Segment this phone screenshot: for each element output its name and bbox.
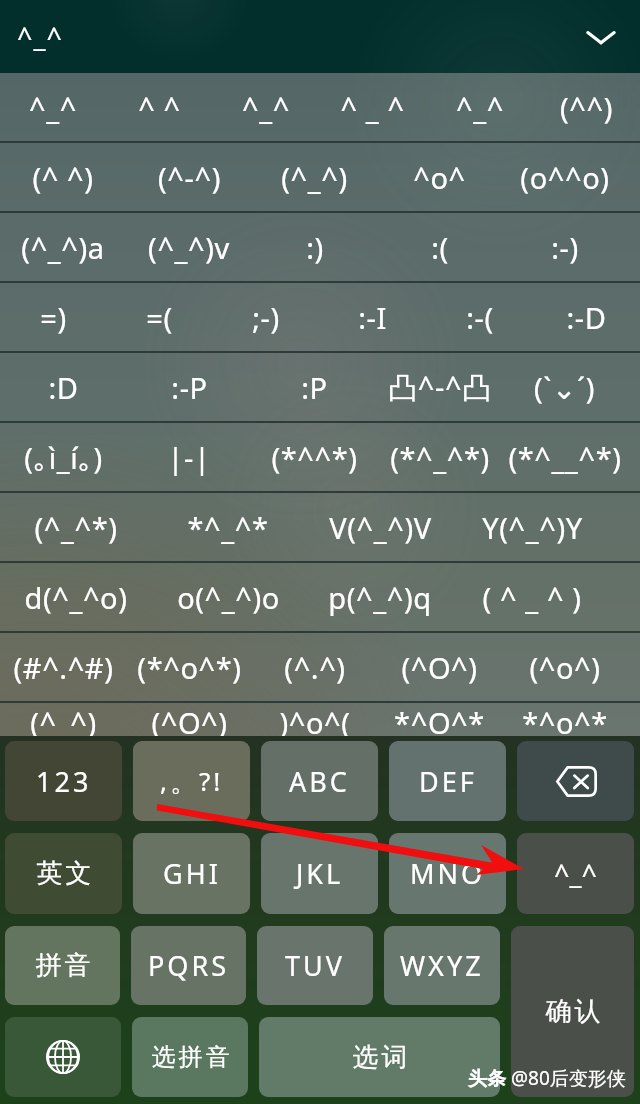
- button[interactable]: ^ ^: [106, 73, 212, 141]
- staticText: :-D: [566, 298, 607, 337]
- staticText: 123: [36, 763, 92, 800]
- button[interactable]: :D: [0, 353, 126, 421]
- button[interactable]: 123: [5, 741, 122, 821]
- staticText: DEF: [419, 763, 477, 800]
- button[interactable]: *^O^*: [377, 703, 502, 736]
- button[interactable]: MNO: [389, 833, 506, 914]
- button[interactable]: )^o^(: [252, 703, 377, 736]
- button[interactable]: V(^_^)V: [304, 493, 456, 561]
- button[interactable]: (^_^)a: [0, 213, 126, 281]
- staticText: *^O^*: [394, 703, 485, 736]
- button[interactable]: (*^o^*): [126, 633, 252, 701]
- button[interactable]: p(^_^)q: [304, 563, 456, 631]
- staticText: :-P: [171, 368, 208, 407]
- button[interactable]: =): [0, 283, 106, 351]
- button[interactable]: 选拼音: [132, 1017, 248, 1097]
- button[interactable]: ^ _ ^: [319, 73, 426, 141]
- button[interactable]: Backspace: [517, 741, 634, 821]
- button[interactable]: 选词: [259, 1017, 500, 1097]
- button[interactable]: (^ ^): [0, 143, 126, 211]
- button[interactable]: GHI: [133, 833, 250, 914]
- button[interactable]: :-P: [126, 353, 252, 421]
- button[interactable]: (^_^)v: [126, 213, 252, 281]
- button[interactable]: (^_^): [0, 703, 126, 736]
- staticText: ABC: [289, 763, 350, 800]
- button[interactable]: (*^__^*): [502, 423, 627, 491]
- button[interactable]: :-(: [426, 283, 533, 351]
- staticText: MNO: [410, 855, 486, 892]
- button[interactable]: 确认: [511, 926, 634, 1097]
- button[interactable]: (｡ì_í｡): [0, 423, 126, 491]
- staticText: @80后变形侠: [511, 1065, 626, 1091]
- button[interactable]: *^_^*: [152, 493, 304, 561]
- staticText: =): [40, 298, 67, 337]
- staticText: TUV: [285, 947, 345, 984]
- button[interactable]: (^O^): [126, 703, 252, 736]
- staticText: (^_^): [281, 158, 348, 197]
- button[interactable]: :(: [377, 213, 502, 281]
- button[interactable]: TUV: [257, 926, 373, 1005]
- button[interactable]: (^_^): [252, 143, 377, 211]
- button[interactable]: DEF: [389, 741, 506, 821]
- staticText: :-I: [358, 298, 387, 337]
- button[interactable]: ^o^: [377, 143, 502, 211]
- staticText: 拼音: [34, 949, 92, 982]
- button[interactable]: WXYZ: [384, 926, 500, 1005]
- staticText: :-(: [466, 298, 494, 337]
- button[interactable]: (^^): [533, 73, 640, 141]
- button[interactable]: (^O^): [377, 633, 502, 701]
- button[interactable]: :P: [252, 353, 377, 421]
- button[interactable]: =(: [106, 283, 212, 351]
- button[interactable]: JKL: [261, 833, 378, 914]
- button[interactable]: ^_^: [426, 73, 533, 141]
- staticText: :(: [431, 228, 449, 267]
- button[interactable]: (^_^*): [0, 493, 152, 561]
- button[interactable]: :-I: [319, 283, 426, 351]
- staticText: (^o^): [529, 648, 601, 687]
- staticText: ;-): [252, 298, 280, 337]
- button[interactable]: (^-^): [126, 143, 252, 211]
- staticText: ,。?!: [160, 763, 224, 799]
- staticText: *^_^*: [187, 508, 269, 547]
- staticText: (^ ^): [32, 158, 94, 197]
- button[interactable]: Switch input language: [5, 1017, 121, 1097]
- button[interactable]: PQRS: [131, 926, 246, 1005]
- button[interactable]: *^o^*: [502, 703, 627, 736]
- button[interactable]: ( ^ _ ^ ): [456, 563, 608, 631]
- button[interactable]: d(^_^o): [0, 563, 152, 631]
- staticText: (o^^o): [520, 158, 610, 197]
- button[interactable]: :): [252, 213, 377, 281]
- staticText: ^ ^: [138, 88, 181, 127]
- button[interactable]: 英文: [5, 833, 122, 914]
- button[interactable]: (*^_^*): [377, 423, 502, 491]
- staticText: (^O^): [401, 648, 478, 687]
- button[interactable]: 凸^-^凸: [377, 353, 502, 421]
- button[interactable]: (^.^): [252, 633, 377, 701]
- staticText: 头条: [468, 1065, 511, 1091]
- staticText: ^_^: [17, 18, 63, 55]
- button[interactable]: Collapse keyboard: [562, 0, 640, 73]
- button[interactable]: :-D: [533, 283, 640, 351]
- button[interactable]: o(^_^)o: [152, 563, 304, 631]
- button[interactable]: ^_^: [212, 73, 319, 141]
- staticText: (^^): [560, 88, 613, 127]
- staticText: 确认: [544, 995, 602, 1028]
- button[interactable]: Y(^_^)Y: [456, 493, 608, 561]
- button[interactable]: ABC: [261, 741, 378, 821]
- button[interactable]: ^_^: [0, 73, 106, 141]
- button[interactable]: |-|: [126, 423, 252, 491]
- button[interactable]: (#^.^#): [0, 633, 126, 701]
- button[interactable]: ^_^: [517, 833, 634, 914]
- button[interactable]: (`⌄´): [502, 353, 627, 421]
- button[interactable]: ;-): [212, 283, 319, 351]
- button[interactable]: (*^^*): [252, 423, 377, 491]
- button[interactable]: (^o^): [502, 633, 627, 701]
- staticText: ( ^ _ ^ ): [482, 578, 582, 617]
- staticText: GHI: [163, 855, 221, 892]
- button[interactable]: :-): [502, 213, 627, 281]
- staticText: :P: [301, 368, 328, 407]
- button[interactable]: 拼音: [5, 926, 120, 1005]
- button[interactable]: (o^^o): [502, 143, 627, 211]
- staticText: =(: [146, 298, 173, 337]
- button[interactable]: ,。?!: [133, 741, 250, 821]
